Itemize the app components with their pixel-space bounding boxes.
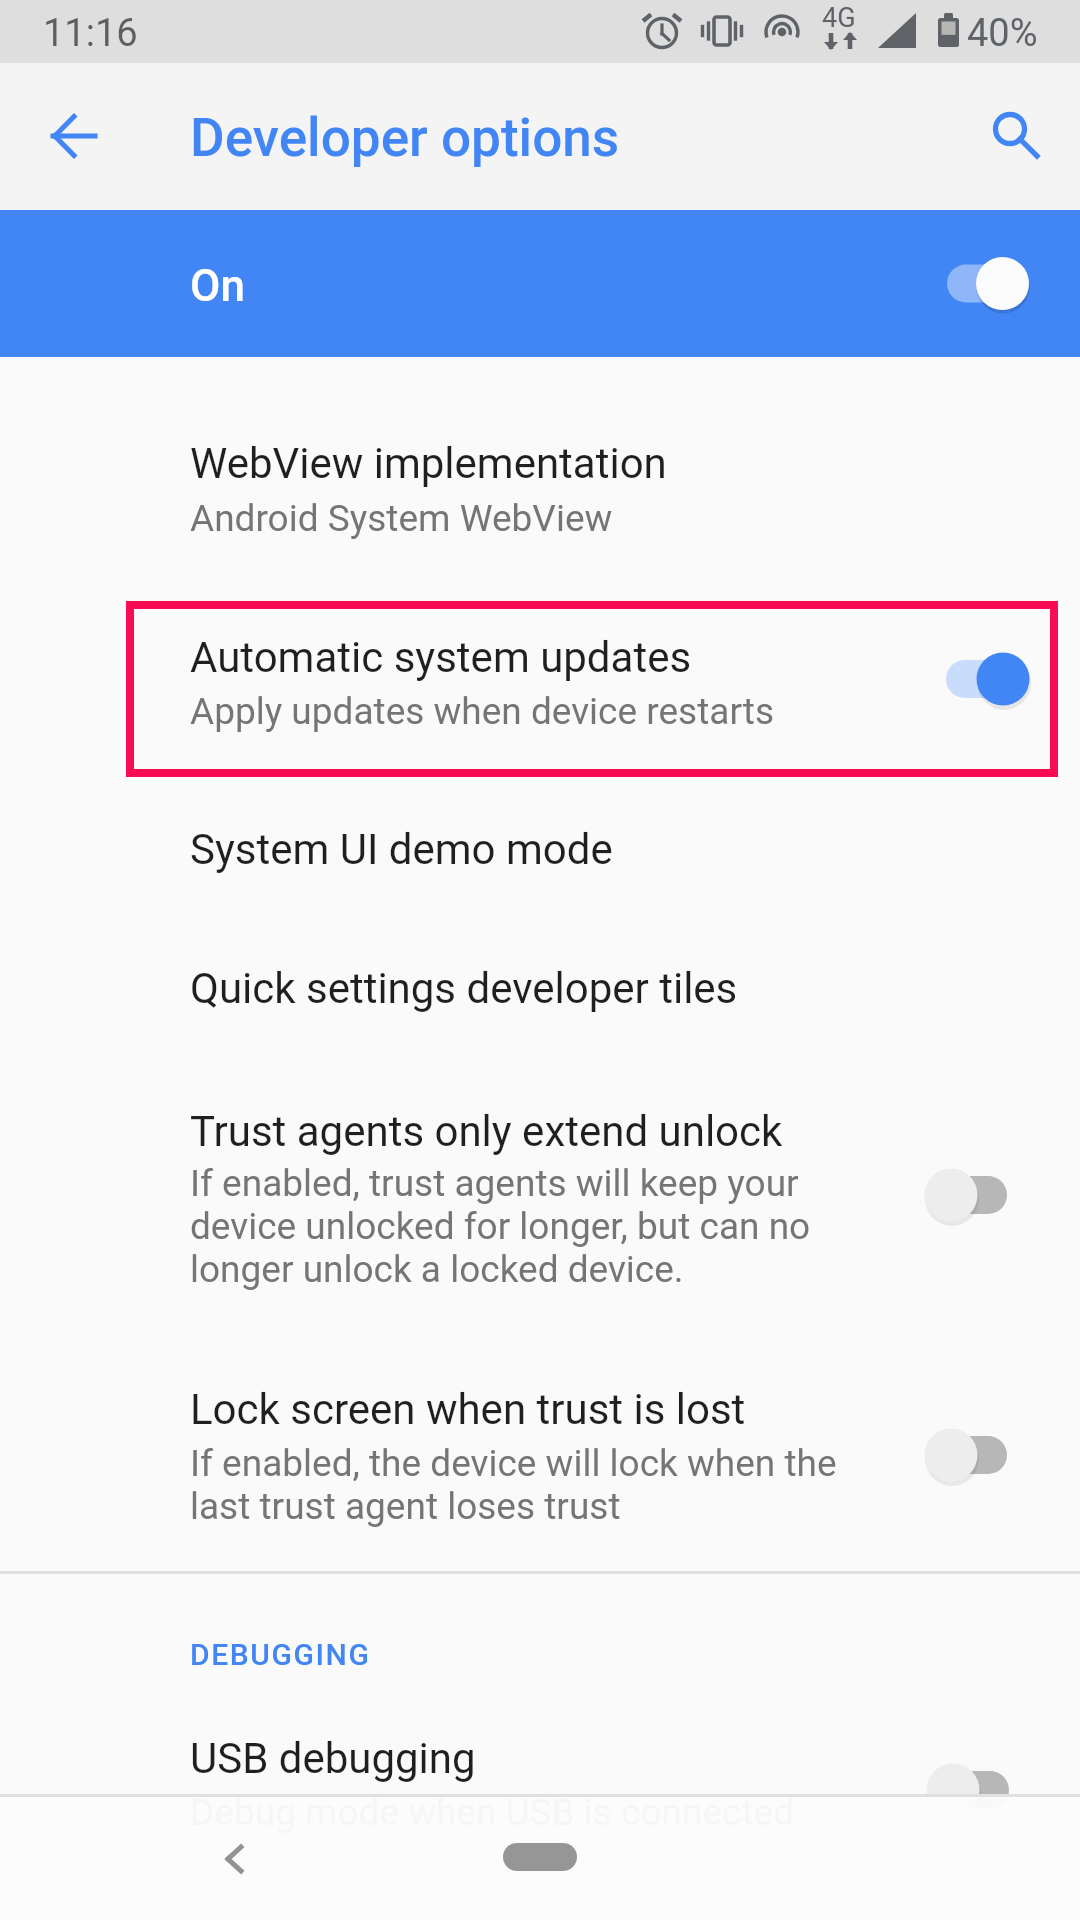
button[interactable]: Toggle off (921, 1746, 1041, 1834)
button[interactable]: On (0, 210, 1080, 357)
button[interactable]: Navigate up (32, 94, 116, 178)
staticText: Developer options (190, 107, 620, 169)
button[interactable]: DEBUGGING (190, 1637, 371, 1672)
button[interactable]: USB debugging (190, 1734, 890, 1788)
button[interactable]: Automatic system updates (190, 633, 890, 687)
staticText: If enabled, trust agents will keep your (190, 1162, 799, 1205)
staticText: WebView implementation (190, 439, 667, 488)
staticText: Automatic system updates (190, 633, 692, 682)
staticText: Android System WebView (190, 497, 613, 540)
button[interactable]: Toggle off (919, 1151, 1039, 1239)
staticText: System UI demo mode (190, 825, 613, 874)
staticText: last trust agent loses trust (190, 1485, 621, 1528)
staticText: Debug mode when USB is connected (190, 1791, 795, 1834)
staticText: Quick settings developer tiles (190, 964, 738, 1013)
staticText: On (190, 260, 245, 312)
button[interactable]: Search (968, 87, 1052, 171)
staticText: 40% (967, 11, 1038, 56)
button[interactable]: Lock screen when trust is lost (190, 1385, 890, 1439)
staticText: longer unlock a locked device. (190, 1248, 684, 1291)
staticText: Lock screen when trust is lost (190, 1385, 746, 1434)
staticText: USB debugging (190, 1734, 476, 1783)
staticText: If enabled, the device will lock when th… (190, 1442, 837, 1485)
button[interactable]: Toggle off (919, 1411, 1039, 1499)
staticText: device unlocked for longer, but can no (190, 1205, 811, 1248)
button[interactable]: Toggle on (945, 635, 1065, 723)
staticText: 4G (822, 2, 856, 34)
staticText: Apply updates when device restarts (190, 690, 775, 733)
button[interactable]: Trust agents only extend unlock (190, 1107, 890, 1161)
button[interactable]: Home (493, 1836, 587, 1878)
staticText: 11:16 (43, 11, 138, 56)
button[interactable]: System UI demo mode (190, 825, 890, 879)
button[interactable]: WebView implementation (190, 439, 890, 493)
button[interactable]: Quick settings developer tiles (190, 964, 890, 1018)
button[interactable]: Back (196, 1822, 266, 1892)
staticText: Trust agents only extend unlock (190, 1107, 783, 1156)
